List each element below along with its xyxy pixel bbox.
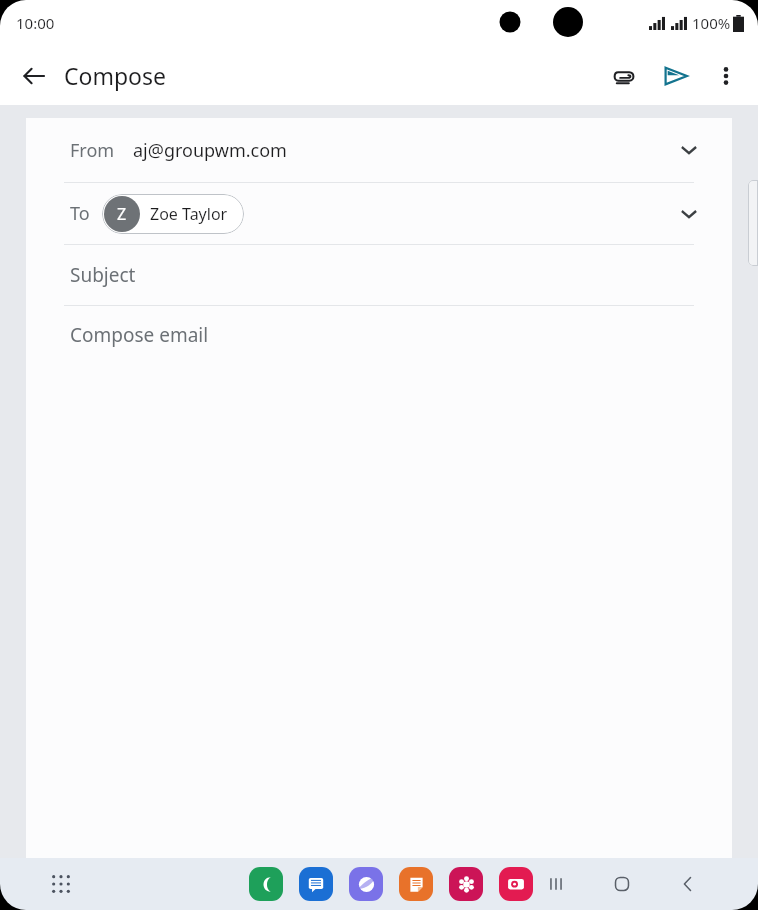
button[interactable]: Back xyxy=(668,864,708,904)
button[interactable]: Gallery xyxy=(449,867,483,901)
button[interactable]: To xyxy=(26,183,732,244)
button[interactable]: Home xyxy=(602,864,642,904)
button[interactable]: Compose email xyxy=(26,306,732,858)
button[interactable]: All apps xyxy=(44,867,78,901)
button[interactable]: From xyxy=(26,118,732,182)
staticText: Z xyxy=(117,203,127,225)
button[interactable]: Send xyxy=(652,52,700,100)
button[interactable]: Attach file xyxy=(600,52,648,100)
button[interactable]: Notes xyxy=(399,867,433,901)
button[interactable]: Edge panel xyxy=(748,180,758,266)
button[interactable]: Recents xyxy=(536,864,576,904)
staticText: Zoe Taylor xyxy=(150,203,228,225)
staticText: Subject xyxy=(70,262,136,288)
staticText: aj@groupwm.com xyxy=(133,138,287,163)
staticText: From xyxy=(70,138,115,163)
button[interactable]: More options xyxy=(702,52,750,100)
button[interactable]: Messages xyxy=(299,867,333,901)
staticText: 10:00 xyxy=(16,13,55,33)
staticText: Compose xyxy=(64,60,167,91)
staticText: To xyxy=(70,201,90,226)
button[interactable]: Z xyxy=(102,194,244,234)
button[interactable]: Back xyxy=(10,52,58,100)
button[interactable]: Internet xyxy=(349,867,383,901)
button[interactable]: Camera xyxy=(499,867,533,901)
staticText: 100% xyxy=(692,13,731,33)
staticText: Compose email xyxy=(70,322,209,348)
button[interactable]: Subject xyxy=(26,245,732,305)
button[interactable]: Phone xyxy=(249,867,283,901)
